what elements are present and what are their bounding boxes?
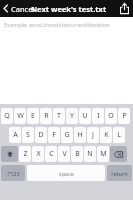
button[interactable]: M	[97, 146, 109, 162]
button[interactable]: D	[35, 127, 47, 143]
button[interactable]: .?123	[1, 165, 25, 181]
staticText: P	[122, 111, 127, 121]
staticText: V	[62, 149, 67, 159]
staticText: K	[104, 130, 109, 140]
button[interactable]: return	[107, 165, 132, 181]
button[interactable]: H	[74, 127, 86, 143]
staticText: I	[97, 111, 100, 121]
button[interactable]: P	[118, 108, 130, 124]
staticText: M	[100, 149, 107, 159]
staticText: F	[52, 130, 56, 140]
staticText: N	[87, 149, 93, 159]
staticText: H	[77, 130, 83, 140]
staticText: J	[92, 130, 94, 140]
staticText: D	[38, 130, 44, 140]
button[interactable]: U	[79, 108, 91, 124]
button[interactable]: space	[27, 165, 105, 181]
button[interactable]: Backspace	[110, 146, 127, 162]
button[interactable]: L	[113, 127, 125, 143]
staticText: W	[17, 111, 24, 121]
button[interactable]: J	[87, 127, 99, 143]
button[interactable]: E	[27, 108, 39, 124]
button[interactable]: V	[58, 146, 70, 162]
staticText: Q	[4, 111, 10, 121]
staticText: A	[13, 130, 18, 140]
staticText: B	[75, 149, 80, 159]
button[interactable]: K	[100, 127, 112, 143]
button[interactable]: A	[9, 127, 21, 143]
button[interactable]: C	[45, 146, 57, 162]
button[interactable]: G	[61, 127, 73, 143]
staticText: G	[64, 130, 70, 140]
staticText: U	[82, 111, 88, 121]
staticText: Next week's test.txt	[31, 4, 107, 14]
staticText: L	[117, 130, 121, 140]
staticText: return	[111, 170, 128, 177]
staticText: X	[36, 149, 41, 159]
staticText: Cancel	[11, 4, 35, 14]
button[interactable]: F	[48, 127, 60, 143]
button[interactable]: I	[92, 108, 104, 124]
button[interactable]: O	[105, 108, 117, 124]
staticText: space	[59, 170, 74, 177]
button[interactable]: B	[71, 146, 83, 162]
staticText: Z	[23, 149, 28, 159]
button[interactable]: T	[53, 108, 65, 124]
staticText: Y	[70, 111, 74, 121]
staticText: S	[26, 130, 30, 140]
button[interactable]: W	[14, 108, 26, 124]
staticText: O	[108, 111, 114, 121]
button[interactable]: Share	[116, 0, 133, 17]
button[interactable]: R	[40, 108, 52, 124]
staticText: C	[49, 149, 54, 159]
staticText: Example: word,translation,transliteratio…	[4, 21, 110, 28]
button[interactable]: S	[22, 127, 34, 143]
button[interactable]: X	[32, 146, 44, 162]
staticText: R	[44, 111, 49, 121]
button[interactable]: Cancel	[0, 0, 38, 17]
staticText: T	[57, 111, 61, 121]
staticText: E	[31, 111, 35, 121]
button[interactable]: N	[84, 146, 96, 162]
staticText: .?123	[6, 170, 20, 177]
button[interactable]: Shift	[1, 146, 18, 162]
button[interactable]: Y	[66, 108, 78, 124]
button[interactable]: Q	[1, 108, 13, 124]
button[interactable]: Z	[19, 146, 31, 162]
